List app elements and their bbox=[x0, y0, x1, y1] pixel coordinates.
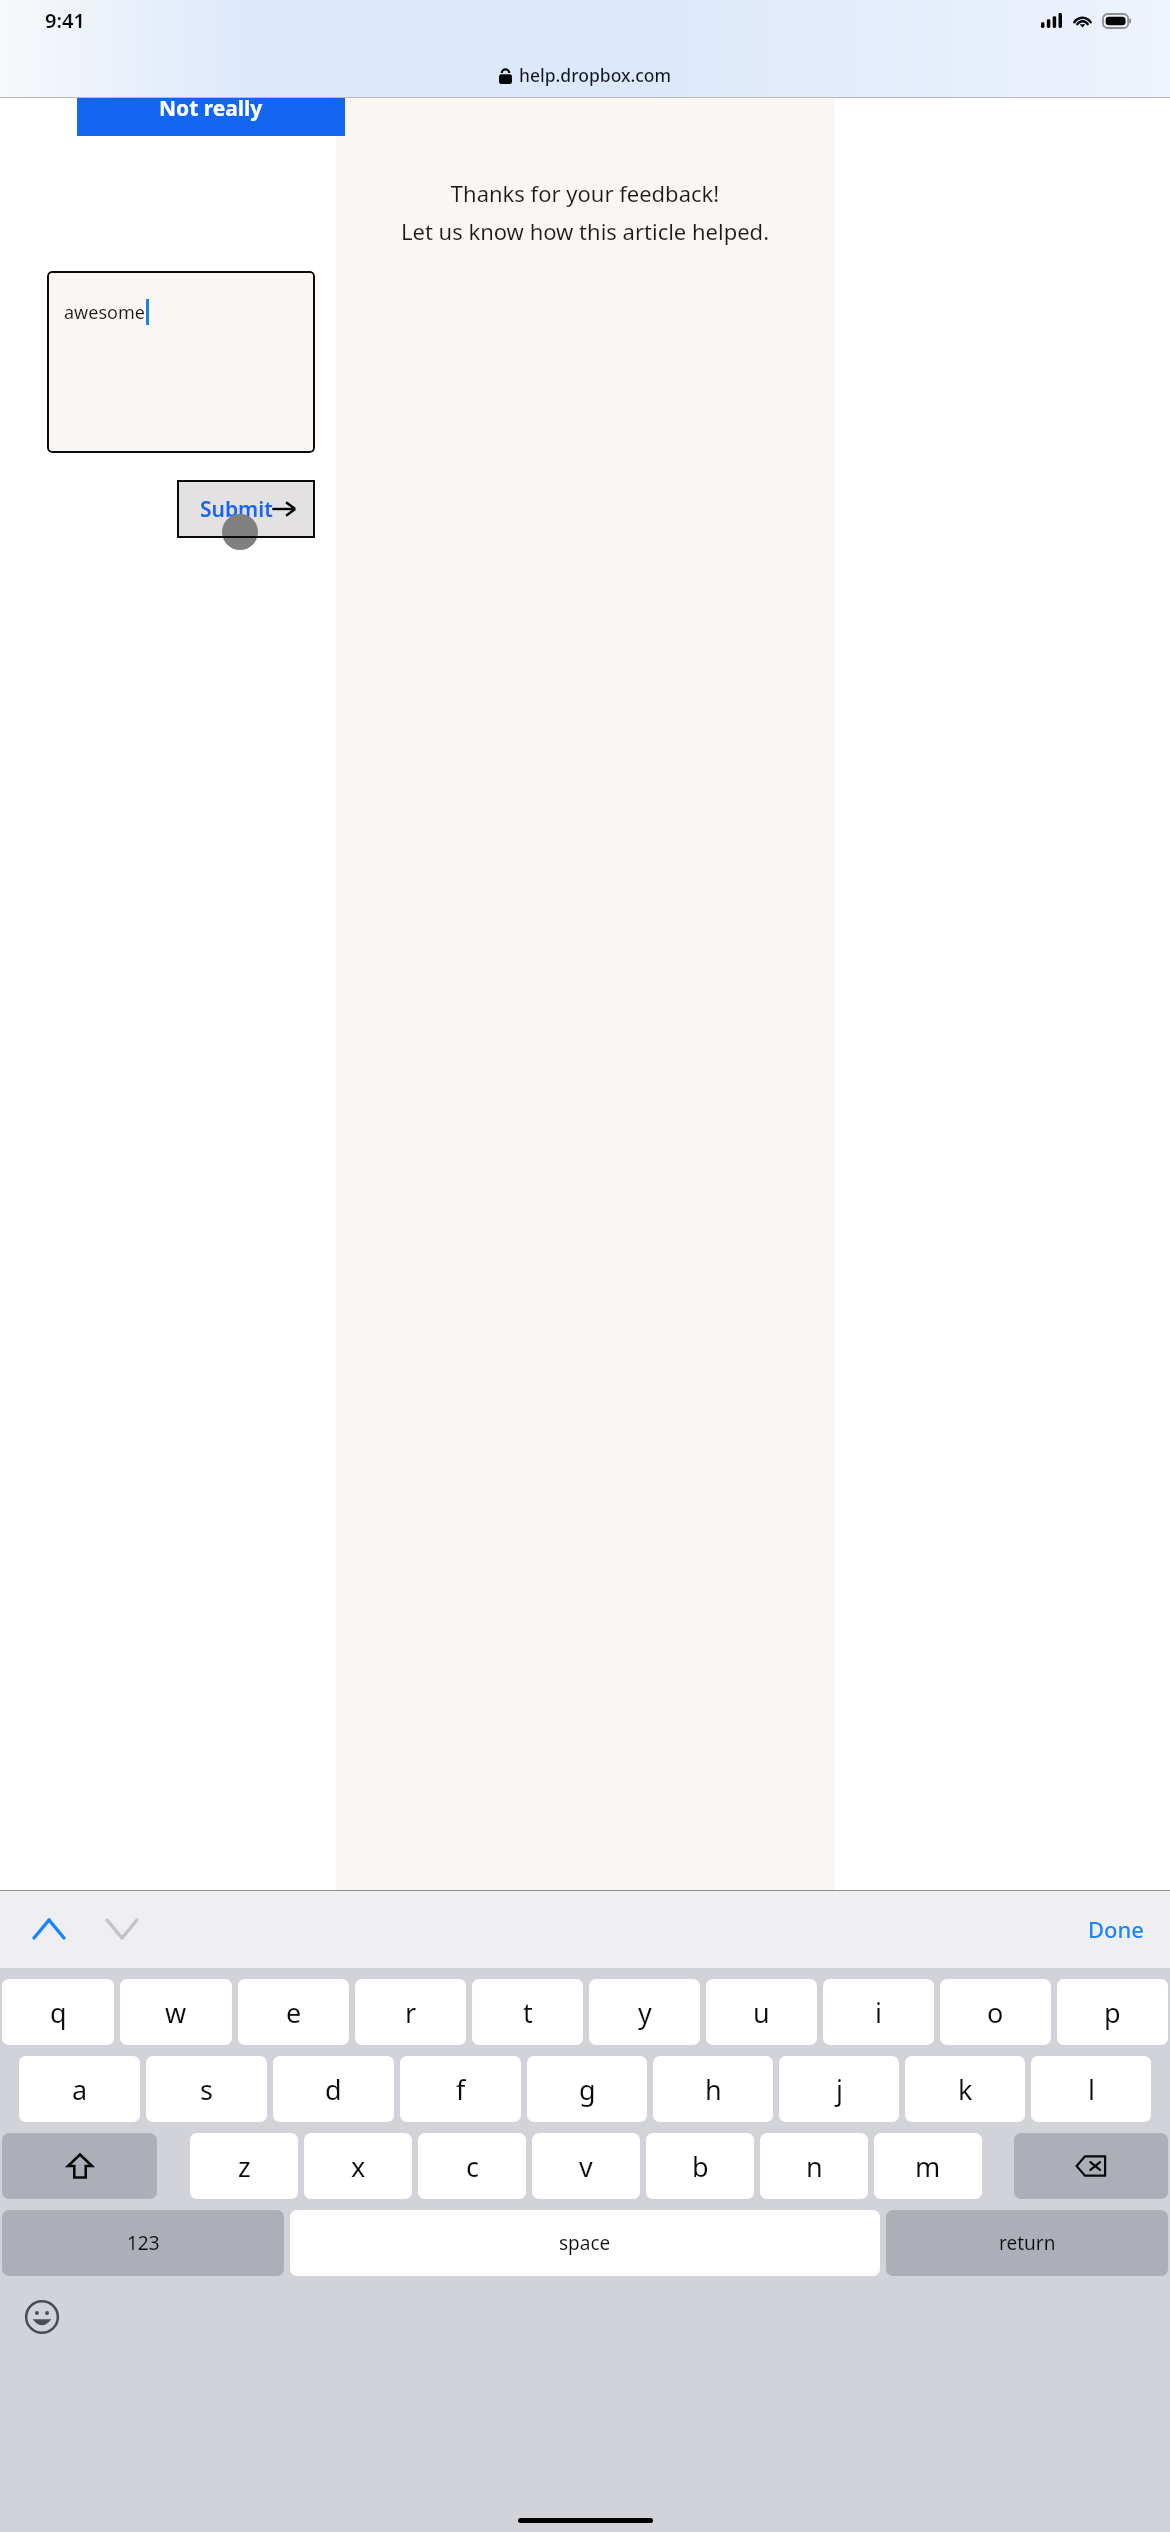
button[interactable]: k bbox=[905, 2056, 1025, 2122]
staticText: e bbox=[286, 1994, 302, 2031]
staticText: Not really bbox=[159, 94, 263, 123]
staticText: r bbox=[405, 1994, 417, 2031]
button[interactable]: g bbox=[527, 2056, 647, 2122]
button[interactable]: 123 bbox=[2, 2210, 284, 2276]
staticText: n bbox=[806, 2148, 823, 2185]
button[interactable]: return bbox=[886, 2210, 1168, 2276]
staticText: return bbox=[999, 2230, 1056, 2256]
button[interactable]: space bbox=[290, 2210, 880, 2276]
staticText: 9:41 bbox=[45, 7, 85, 34]
staticText: 123 bbox=[127, 2230, 160, 2256]
button[interactable]: t bbox=[472, 1979, 583, 2045]
button[interactable]: i bbox=[823, 1979, 934, 2045]
button[interactable]: q bbox=[2, 1979, 114, 2045]
button[interactable]: m bbox=[874, 2133, 982, 2199]
button[interactable]: r bbox=[355, 1979, 466, 2045]
staticText: t bbox=[523, 1994, 533, 2031]
staticText: w bbox=[165, 1994, 187, 2031]
staticText: b bbox=[692, 2148, 709, 2185]
staticText: k bbox=[958, 2071, 973, 2108]
staticText: Submit bbox=[200, 495, 273, 524]
staticText: g bbox=[579, 2071, 596, 2108]
button[interactable]: s bbox=[146, 2056, 267, 2122]
button[interactable]: Backspace bbox=[1014, 2133, 1168, 2199]
staticText: Done bbox=[1088, 1914, 1144, 1944]
button[interactable]: n bbox=[760, 2133, 868, 2199]
staticText: awesome bbox=[64, 300, 145, 325]
staticText: i bbox=[875, 1994, 882, 2031]
button[interactable]: y bbox=[589, 1979, 700, 2045]
button[interactable]: awesome bbox=[47, 271, 315, 453]
staticText: z bbox=[238, 2148, 251, 2185]
button[interactable]: d bbox=[273, 2056, 394, 2122]
button[interactable]: Previous field bbox=[24, 1904, 74, 1954]
button[interactable]: help.dropbox.com bbox=[0, 52, 1170, 98]
button[interactable]: a bbox=[19, 2056, 140, 2122]
staticText: j bbox=[836, 2071, 843, 2108]
staticText: l bbox=[1088, 2071, 1095, 2108]
button[interactable]: p bbox=[1057, 1979, 1168, 2045]
staticText: help.dropbox.com bbox=[519, 63, 672, 87]
button[interactable]: Not really bbox=[77, 98, 345, 136]
button[interactable]: Emoji keyboard bbox=[16, 2291, 68, 2343]
button[interactable]: v bbox=[532, 2133, 640, 2199]
button[interactable]: u bbox=[706, 1979, 817, 2045]
staticText: h bbox=[705, 2071, 722, 2108]
staticText: d bbox=[325, 2071, 342, 2108]
button[interactable]: b bbox=[646, 2133, 754, 2199]
button[interactable]: Next field bbox=[97, 1904, 147, 1954]
button[interactable]: Shift bbox=[2, 2133, 157, 2199]
staticText: v bbox=[579, 2148, 593, 2185]
button[interactable]: f bbox=[400, 2056, 521, 2122]
button[interactable]: o bbox=[940, 1979, 1051, 2045]
button[interactable]: Done bbox=[1078, 1906, 1154, 1952]
button[interactable]: j bbox=[779, 2056, 899, 2122]
staticText: q bbox=[50, 1994, 67, 2031]
button[interactable]: l bbox=[1031, 2056, 1151, 2122]
staticText: u bbox=[753, 1994, 770, 2031]
button[interactable]: x bbox=[304, 2133, 412, 2199]
staticText: a bbox=[72, 2071, 88, 2108]
staticText: p bbox=[1104, 1994, 1121, 2031]
button[interactable]: c bbox=[418, 2133, 526, 2199]
staticText: m bbox=[915, 2148, 941, 2185]
button[interactable]: Submit bbox=[177, 480, 315, 538]
staticText: o bbox=[987, 1994, 1004, 2031]
staticText: s bbox=[200, 2071, 213, 2108]
staticText: space bbox=[559, 2230, 611, 2256]
staticText: f bbox=[456, 2071, 466, 2108]
staticText: Thanks for your feedback! bbox=[0, 178, 1170, 208]
staticText: y bbox=[638, 1994, 652, 2031]
button[interactable]: w bbox=[120, 1979, 232, 2045]
staticText: x bbox=[351, 2148, 366, 2185]
staticText: c bbox=[466, 2148, 479, 2185]
staticText: Let us know how this article helped. bbox=[0, 216, 1170, 246]
button[interactable]: h bbox=[653, 2056, 773, 2122]
button[interactable]: z bbox=[190, 2133, 298, 2199]
button[interactable]: e bbox=[238, 1979, 349, 2045]
